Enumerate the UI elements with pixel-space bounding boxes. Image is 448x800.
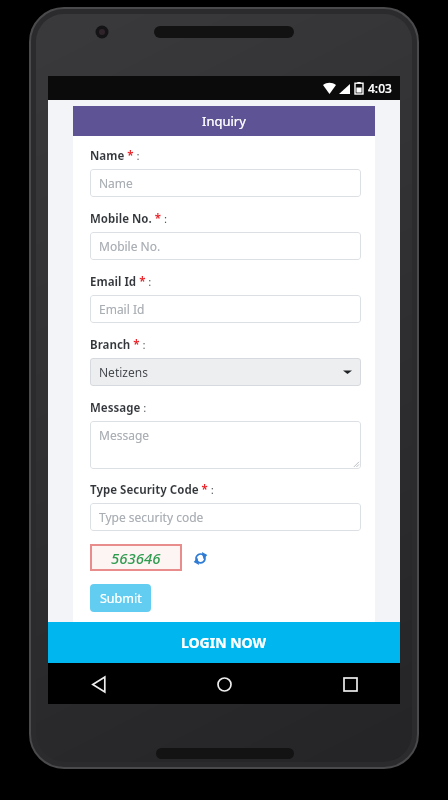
staticText: Netizens — [99, 364, 148, 380]
staticText: Branch * : — [90, 337, 146, 353]
staticText: Type Security Code * : — [90, 482, 214, 498]
button[interactable]: 563646 — [90, 544, 182, 571]
staticText: Inquiry — [202, 112, 246, 130]
staticText: Mobile No. — [99, 238, 161, 254]
staticText: Mobile No. * : — [90, 211, 168, 227]
button[interactable]: Email Id — [90, 295, 361, 323]
button[interactable]: Home — [208, 668, 240, 700]
staticText: Name * : — [90, 148, 140, 164]
staticText: Message : — [90, 400, 147, 416]
button[interactable]: Back — [82, 668, 114, 700]
button[interactable]: Refresh security code — [190, 548, 210, 568]
button[interactable]: LOGIN NOW — [48, 622, 400, 663]
staticText: Email Id — [99, 301, 145, 317]
staticText: Name — [99, 175, 133, 191]
button[interactable]: Message — [90, 421, 361, 469]
button[interactable]: Submit — [90, 584, 151, 612]
button[interactable]: Name — [90, 169, 361, 197]
staticText: Submit — [100, 590, 142, 607]
button[interactable]: Inquiry — [73, 106, 375, 136]
staticText: Message — [99, 427, 150, 443]
button[interactable]: Type security code — [90, 503, 361, 531]
staticText: Type security code — [99, 509, 204, 525]
button[interactable]: Mobile No. — [90, 232, 361, 260]
staticText: 4:03 — [368, 80, 392, 96]
button[interactable]: Netizens — [90, 358, 361, 386]
staticText: Email Id * : — [90, 274, 152, 290]
button[interactable]: Recent apps — [334, 668, 366, 700]
staticText: LOGIN NOW — [181, 633, 267, 652]
staticText: 563646 — [111, 548, 161, 568]
